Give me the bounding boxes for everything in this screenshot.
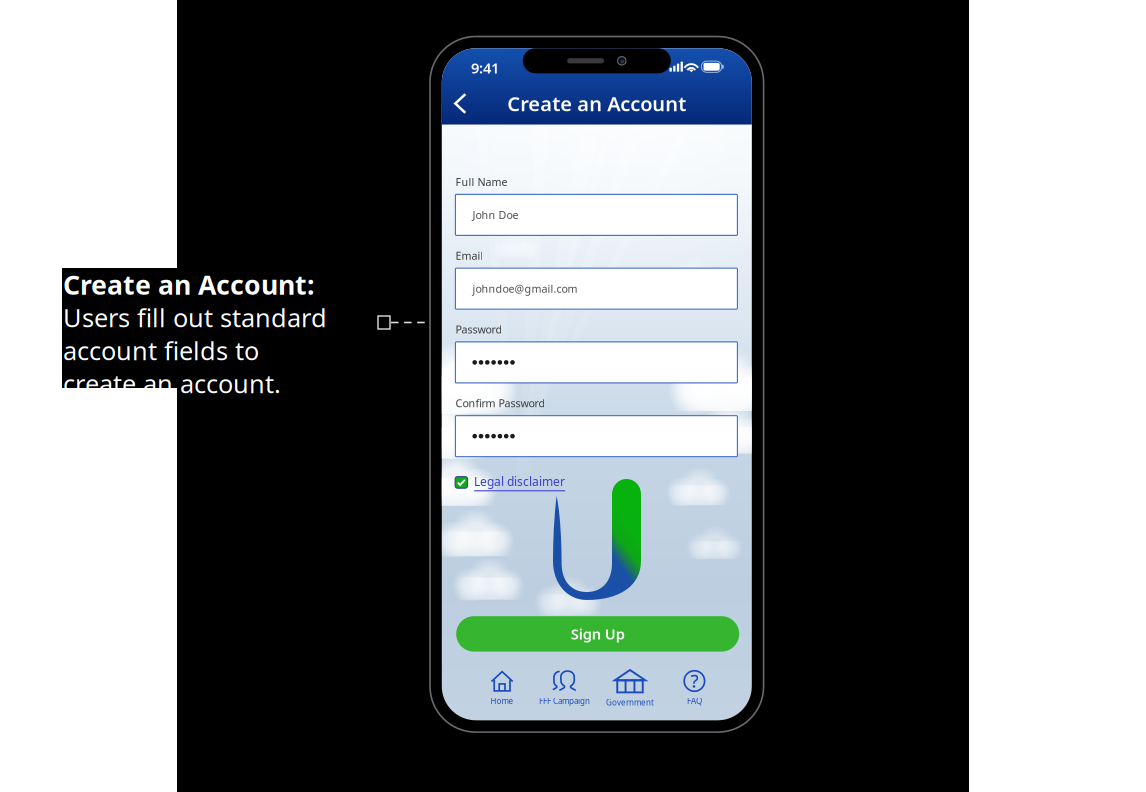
staticText: Confirm Password [455, 396, 545, 410]
button[interactable] [455, 342, 737, 383]
button[interactable]: Sign Up [456, 616, 739, 652]
button[interactable]: John Doe [455, 194, 737, 235]
staticText: FAQ [687, 695, 702, 706]
staticText: FFF Campaign [539, 695, 590, 706]
staticText: Full Name [455, 175, 507, 189]
button[interactable]: Home [470, 669, 534, 707]
staticText: 9:41 [471, 58, 499, 78]
staticText: Legal disclaimer [474, 473, 565, 489]
staticText: johndoe@gmail.com [472, 281, 577, 296]
staticText: Home [491, 695, 514, 706]
staticText: Users fill out standard [63, 301, 327, 334]
staticText: Create an Account: [63, 267, 314, 302]
button[interactable]: Legal disclaimer [455, 473, 565, 491]
staticText: Email [455, 248, 483, 263]
button[interactable]: ? [662, 669, 726, 707]
staticText: Government [606, 697, 654, 708]
staticText: Password [455, 322, 502, 336]
staticText: Sign Up [571, 624, 625, 644]
button[interactable]: Back [445, 83, 476, 124]
button[interactable]: FFF Campaign [533, 669, 597, 707]
button[interactable]: Government [598, 669, 662, 707]
staticText: John Doe [472, 208, 518, 222]
staticText: account fields to [63, 334, 259, 367]
staticText: ? [690, 668, 698, 693]
staticText: create an account. [63, 367, 281, 400]
staticText: Create an Account [507, 90, 686, 117]
button[interactable] [455, 416, 737, 457]
button[interactable]: johndoe@gmail.com [455, 268, 737, 309]
